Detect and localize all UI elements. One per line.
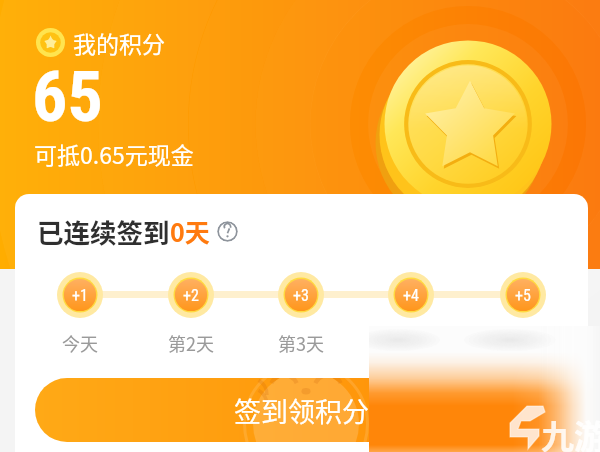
button[interactable]: 今天 xyxy=(57,272,103,318)
staticText: 九游 xyxy=(541,411,600,452)
button[interactable]: 第4天 xyxy=(388,272,434,318)
staticText: 第2天 xyxy=(168,330,214,356)
staticText: 今天 xyxy=(62,330,98,356)
staticText: 第4天 xyxy=(388,330,434,356)
button[interactable]: 第2天 xyxy=(168,272,214,318)
button[interactable]: 我的积分 xyxy=(36,26,165,59)
staticText: +2 xyxy=(183,286,199,305)
staticText: +1 xyxy=(72,286,88,305)
staticText: 0天 xyxy=(170,213,210,249)
staticText: 65 xyxy=(32,56,103,138)
staticText: 签到领积分 xyxy=(234,391,369,430)
button[interactable]: 签到领积分 xyxy=(35,378,568,442)
staticText: +3 xyxy=(293,286,309,305)
button[interactable]: 说明 xyxy=(217,221,238,242)
staticText: +5 xyxy=(515,286,531,305)
staticText: 已连续签到 xyxy=(37,212,170,250)
button[interactable]: 第3天 xyxy=(278,272,324,318)
staticText: 可抵0.65元现金 xyxy=(34,137,194,170)
staticText: 我的积分 xyxy=(73,26,165,59)
staticText: 第5天 xyxy=(500,330,546,356)
staticText: +4 xyxy=(403,286,419,305)
button[interactable]: 第5天 xyxy=(500,272,546,318)
staticText: 第3天 xyxy=(278,330,324,356)
